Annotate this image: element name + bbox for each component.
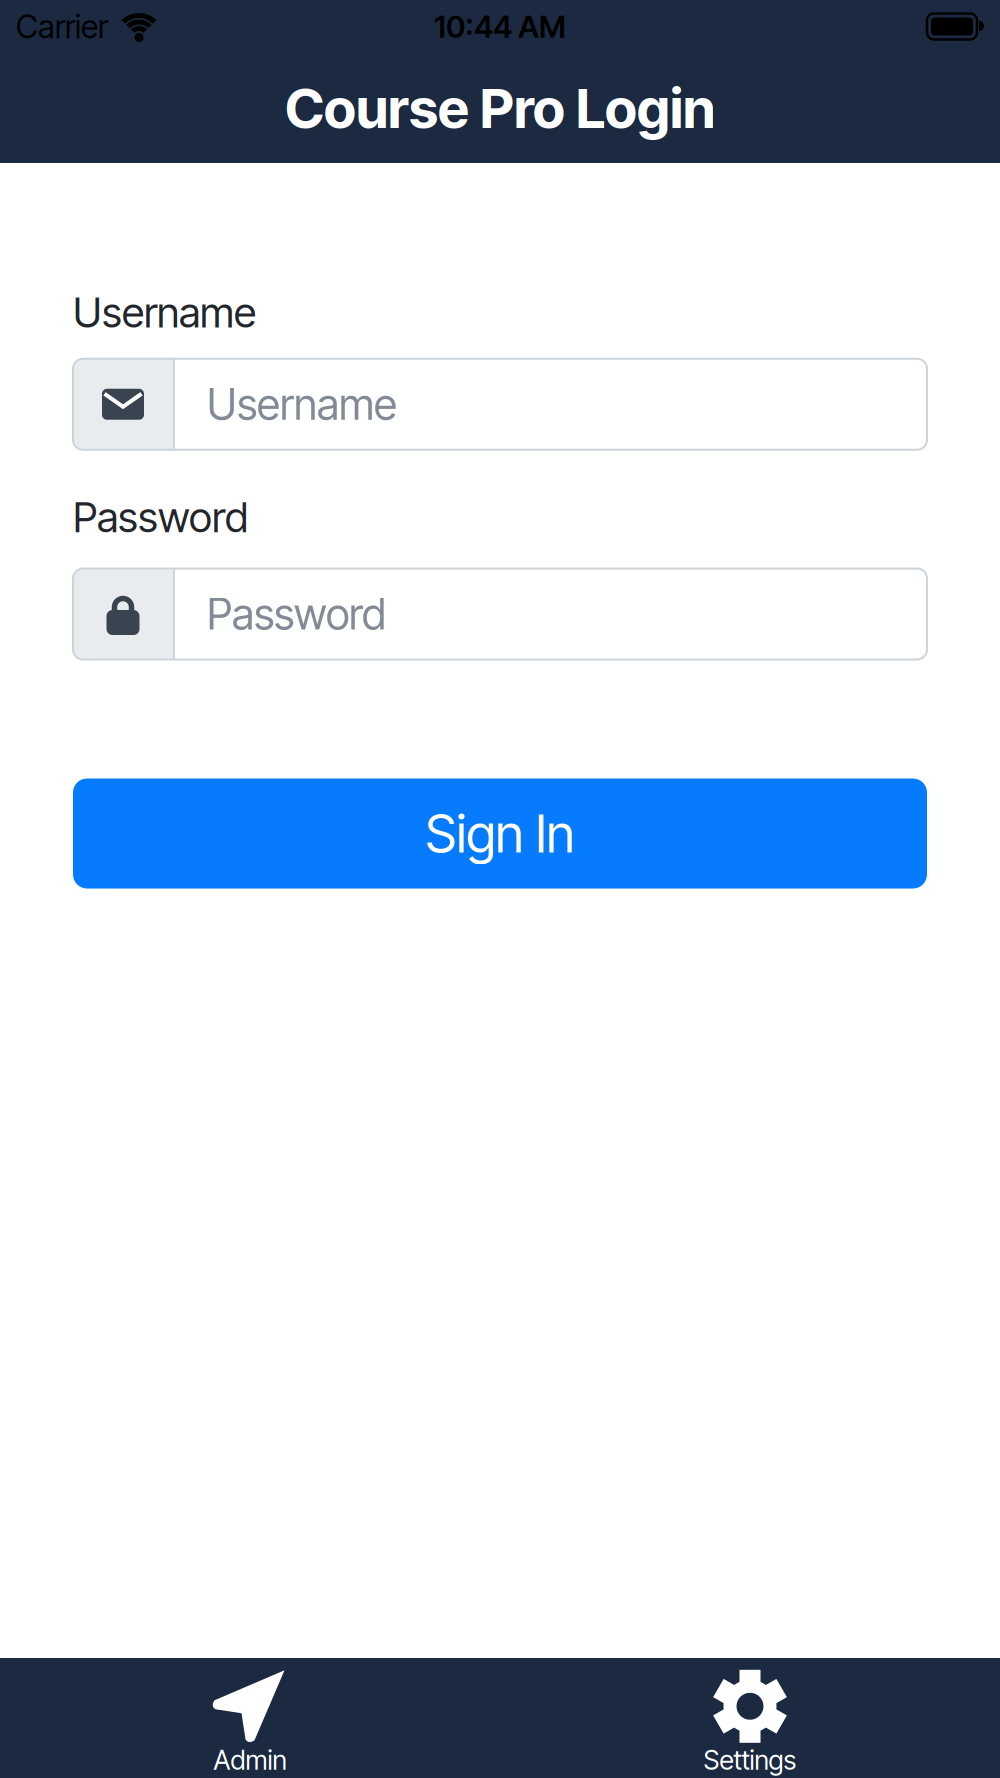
staticText: Admin <box>213 1744 286 1776</box>
staticText: Course Pro Login <box>285 76 715 140</box>
button[interactable]: Sign In <box>73 778 927 888</box>
staticText: Username <box>207 379 397 429</box>
staticText: Sign In <box>425 803 574 864</box>
staticText: 10:44 AM <box>434 8 566 45</box>
button[interactable]: Username <box>73 359 927 450</box>
button[interactable]: Settings <box>500 1658 1000 1778</box>
staticText: Password <box>207 589 386 639</box>
button[interactable]: Admin <box>0 1658 500 1778</box>
staticText: Username <box>73 288 256 337</box>
staticText: Carrier <box>16 8 108 45</box>
staticText: Password <box>73 493 248 542</box>
button[interactable]: Password <box>73 568 927 659</box>
staticText: Settings <box>703 1744 796 1776</box>
